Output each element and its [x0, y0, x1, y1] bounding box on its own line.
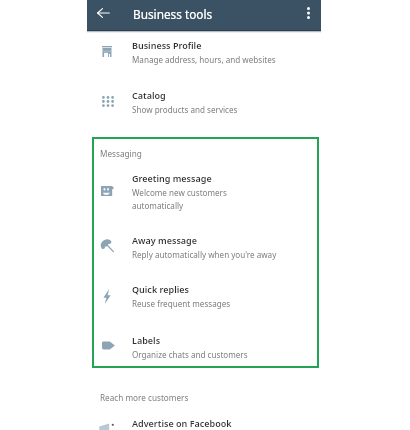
button[interactable]: Back	[91, 0, 115, 30]
button[interactable]: Catalog	[87, 82, 321, 116]
staticText: Away message	[132, 234, 197, 246]
button[interactable]: Quick replies	[87, 277, 321, 311]
staticText: Labels	[132, 334, 161, 346]
staticText: Business Profile	[132, 39, 202, 51]
staticText: Welcome new customers	[132, 187, 227, 198]
staticText: Quick replies	[132, 283, 189, 295]
button[interactable]: Advertise on Facebook	[87, 410, 321, 430]
staticText: Advertise on Facebook	[132, 417, 232, 429]
staticText: Greeting message	[132, 172, 212, 184]
staticText: automatically	[132, 200, 184, 211]
staticText: Business tools	[133, 6, 213, 22]
staticText: Reply automatically when you're away	[132, 249, 277, 260]
staticText: Show products and services	[132, 104, 238, 115]
staticText: Reach more customers	[100, 392, 189, 403]
staticText: Reuse frequent messages	[132, 298, 231, 309]
staticText: Catalog	[132, 89, 166, 101]
button[interactable]: Away message	[87, 228, 321, 262]
button[interactable]: Business Profile	[87, 33, 321, 67]
button[interactable]: Greeting message	[87, 165, 321, 210]
button[interactable]: Labels	[87, 327, 321, 361]
staticText: Manage address, hours, and websites	[132, 54, 276, 65]
staticText: Organize chats and customers	[132, 349, 248, 360]
button[interactable]: More options	[299, 0, 318, 28]
staticText: Messaging	[100, 148, 142, 159]
